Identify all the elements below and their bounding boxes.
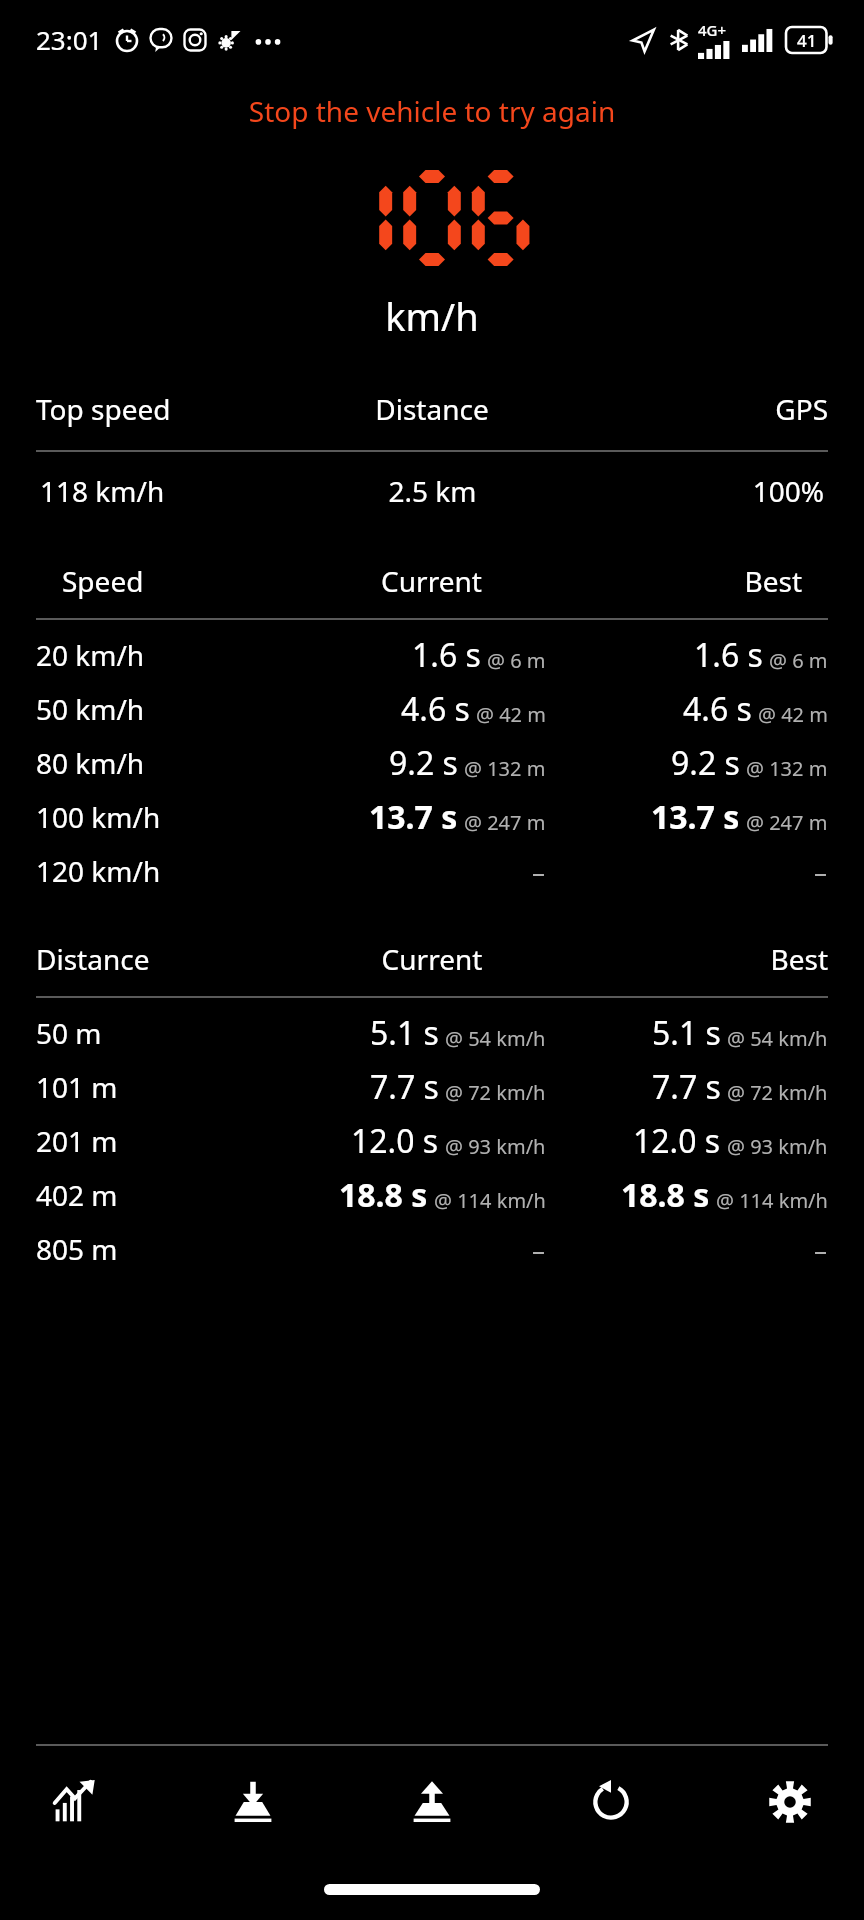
staticText: @ 54 km/h — [727, 1025, 828, 1052]
staticText: 12.0 s — [633, 1119, 721, 1163]
staticText: 120 km/h — [36, 852, 261, 890]
staticText: 4.6 s — [683, 687, 752, 731]
staticText: @ 132 m — [746, 755, 828, 782]
staticText: km/h — [0, 290, 864, 342]
staticText: 7.7 s — [652, 1065, 721, 1109]
button[interactable]: 100 km/h — [0, 790, 864, 844]
staticText: 100% — [563, 472, 824, 510]
staticText: 5.1 s — [370, 1011, 439, 1055]
staticText: 1.6 s — [412, 633, 481, 677]
staticText: @ 247 m — [464, 809, 546, 836]
staticText: 402 m — [36, 1176, 261, 1214]
button[interactable]: 20 km/h — [0, 628, 864, 682]
staticText: 4.6 s — [401, 687, 470, 731]
staticText: 805 m — [36, 1230, 261, 1268]
staticText: Distance — [300, 390, 564, 428]
staticText: 4G+ — [698, 20, 727, 40]
staticText: 18.8 s — [339, 1173, 428, 1217]
staticText: Current — [300, 940, 564, 978]
button[interactable]: Settings — [742, 1754, 838, 1850]
staticText: – — [532, 1232, 546, 1267]
staticText: @ 6 m — [769, 647, 828, 674]
staticText: Best — [555, 562, 802, 600]
staticText: – — [814, 1232, 828, 1267]
staticText: 20 km/h — [36, 636, 261, 674]
staticText: 12.0 s — [351, 1119, 439, 1163]
staticText: 100 km/h — [36, 798, 261, 836]
staticText: 1.6 s — [694, 633, 763, 677]
staticText: Best — [564, 940, 828, 978]
staticText: 101 m — [36, 1068, 261, 1106]
staticText: @ 114 km/h — [716, 1187, 828, 1214]
staticText: 201 m — [36, 1122, 261, 1160]
staticText: @ 42 m — [476, 701, 546, 728]
staticText: 18.8 s — [621, 1173, 710, 1217]
staticText: 9.2 s — [389, 741, 458, 785]
button[interactable]: 50 m — [0, 1006, 864, 1060]
button[interactable]: Statistics — [26, 1754, 122, 1850]
staticText: Current — [308, 562, 555, 600]
staticText: 7.7 s — [370, 1065, 439, 1109]
staticText: Top speed — [36, 390, 300, 428]
staticText: Stop the vehicle to try again — [0, 92, 864, 130]
button[interactable]: 120 km/h — [0, 844, 864, 898]
staticText: Speed — [62, 562, 308, 600]
staticText: 41 — [797, 29, 817, 52]
button[interactable]: 201 m — [0, 1114, 864, 1168]
staticText: – — [532, 854, 546, 889]
staticText: 80 km/h — [36, 744, 261, 782]
button[interactable]: Import — [205, 1754, 301, 1850]
staticText: @ 54 km/h — [445, 1025, 546, 1052]
staticText: @ 93 km/h — [445, 1133, 546, 1160]
staticText: 50 m — [36, 1014, 261, 1052]
button[interactable]: 50 km/h — [0, 682, 864, 736]
staticText: @ 72 km/h — [445, 1079, 546, 1106]
staticText: @ 93 km/h — [727, 1133, 828, 1160]
staticText: – — [814, 854, 828, 889]
staticText: @ 247 m — [746, 809, 828, 836]
button[interactable]: 101 m — [0, 1060, 864, 1114]
staticText: @ 42 m — [758, 701, 828, 728]
button[interactable]: 80 km/h — [0, 736, 864, 790]
button[interactable]: Export — [384, 1754, 480, 1850]
staticText: 13.7 s — [651, 795, 740, 839]
staticText: Distance — [36, 940, 300, 978]
staticText: 9.2 s — [671, 741, 740, 785]
staticText: 23:01 — [36, 22, 103, 57]
button[interactable]: 402 m — [0, 1168, 864, 1222]
staticText: 5.1 s — [652, 1011, 721, 1055]
staticText: @ 6 m — [487, 647, 546, 674]
button[interactable]: 805 m — [0, 1222, 864, 1276]
staticText: 118 km/h — [40, 472, 302, 510]
staticText: 50 km/h — [36, 690, 261, 728]
button[interactable]: Reset — [563, 1754, 659, 1850]
staticText: GPS — [564, 390, 828, 428]
staticText: 2.5 km — [302, 472, 563, 510]
staticText: 13.7 s — [369, 795, 458, 839]
staticText: @ 72 km/h — [727, 1079, 828, 1106]
staticText: @ 114 km/h — [434, 1187, 546, 1214]
staticText: @ 132 m — [464, 755, 546, 782]
